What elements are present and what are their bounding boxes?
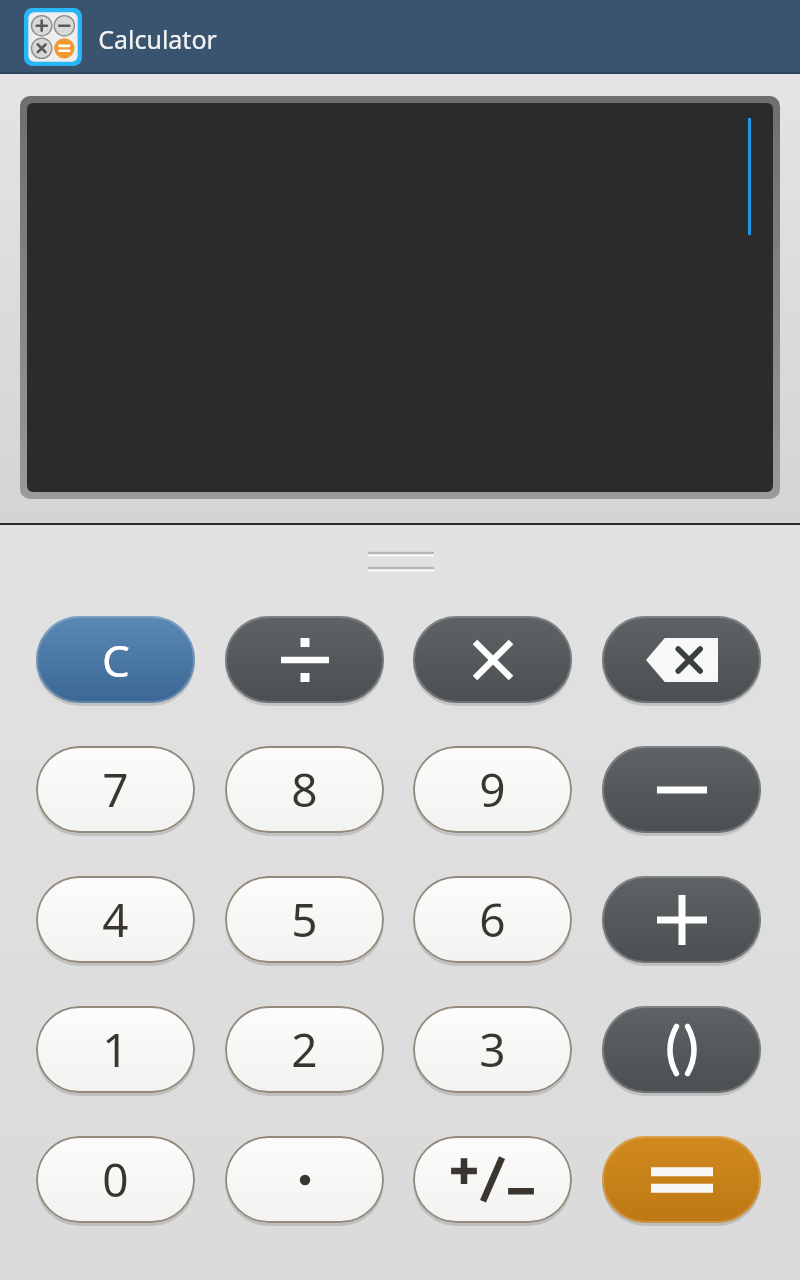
button[interactable]: 8	[225, 746, 384, 833]
button[interactable]	[413, 1136, 572, 1223]
button[interactable]	[225, 616, 384, 703]
staticText: C	[102, 630, 130, 690]
button[interactable]	[413, 616, 572, 703]
button[interactable]	[602, 1006, 761, 1093]
button[interactable]: 2	[225, 1006, 384, 1093]
button[interactable]: 0	[36, 1136, 195, 1223]
button[interactable]: 7	[36, 746, 195, 833]
button[interactable]: 4	[36, 876, 195, 963]
staticText: 6	[479, 888, 506, 951]
staticText: 7	[102, 758, 129, 821]
button[interactable]: 3	[413, 1006, 572, 1093]
staticText: 2	[291, 1018, 318, 1081]
button[interactable]: C	[36, 616, 195, 703]
staticText: 8	[291, 758, 318, 821]
button[interactable]: 5	[225, 876, 384, 963]
staticText: 5	[291, 888, 318, 951]
staticText: 0	[102, 1148, 129, 1211]
button[interactable]: 6	[413, 876, 572, 963]
button[interactable]	[27, 103, 773, 492]
button[interactable]: Calculator app icon	[24, 8, 82, 66]
button[interactable]	[602, 876, 761, 963]
staticText: 3	[479, 1018, 506, 1081]
button[interactable]	[602, 1136, 761, 1223]
button[interactable]: 1	[36, 1006, 195, 1093]
staticText: 9	[479, 758, 506, 821]
button[interactable]	[602, 746, 761, 833]
button[interactable]: 9	[413, 746, 572, 833]
button[interactable]: Backspace	[602, 616, 761, 703]
staticText: Calculator	[98, 22, 217, 56]
staticText: 1	[102, 1018, 129, 1081]
button[interactable]	[225, 1136, 384, 1223]
staticText: 4	[102, 888, 129, 951]
